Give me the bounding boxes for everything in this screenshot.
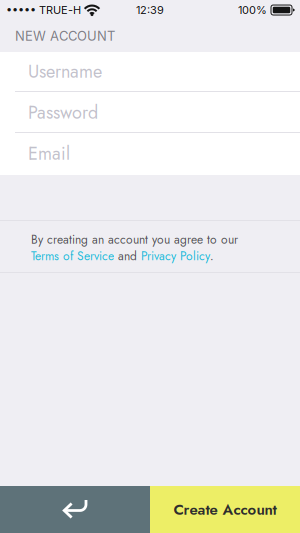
staticText: 100%	[238, 3, 267, 17]
button[interactable]: Password	[0, 93, 300, 134]
staticText: ••••• TRUE-H	[6, 3, 81, 17]
staticText: Privacy Policy	[141, 247, 210, 265]
staticText: Create Account	[173, 499, 276, 520]
button[interactable]: Back	[0, 486, 150, 533]
button[interactable]: Email	[0, 134, 300, 175]
button[interactable]: Privacy Policy	[141, 247, 210, 265]
staticText: Terms of Service	[31, 247, 114, 265]
staticText: and	[114, 247, 141, 265]
staticText: 12:39	[136, 3, 164, 17]
staticText: Password	[28, 99, 98, 125]
staticText: By creating an account you agree to our	[31, 231, 238, 248]
staticText: Username	[28, 58, 102, 84]
staticText: .	[210, 247, 214, 265]
staticText: NEW ACCOUNT	[15, 28, 115, 44]
button[interactable]: Create Account	[150, 486, 300, 533]
button[interactable]: Username	[0, 52, 300, 93]
button[interactable]: Terms of Service	[31, 247, 114, 265]
staticText: Email	[28, 140, 70, 166]
